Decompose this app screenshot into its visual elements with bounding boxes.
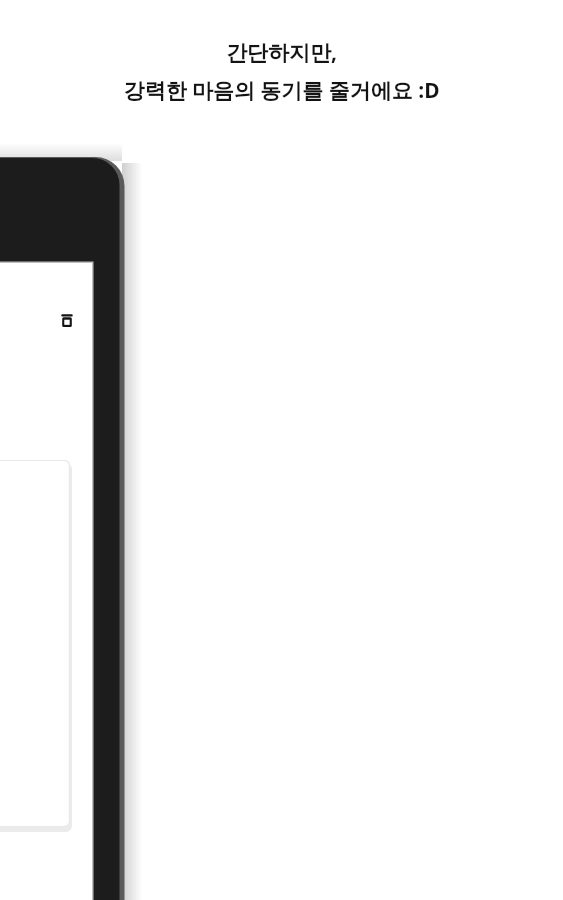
staticText: 간단하지만,	[226, 38, 337, 67]
staticText: 강력한 마음의 동기를 줄거에요 :D	[123, 76, 440, 105]
button[interactable]: Delete	[59, 313, 75, 329]
